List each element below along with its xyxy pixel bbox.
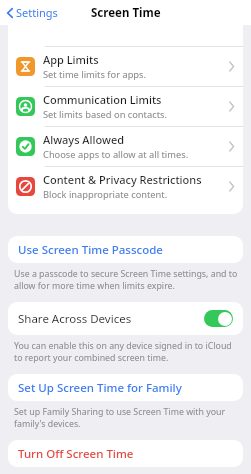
- button[interactable]: Turn Off Screen Time: [8, 440, 243, 467]
- staticText: You can enable this on any device signed…: [14, 340, 239, 364]
- button[interactable]: Use Screen Time Passcode: [8, 236, 243, 263]
- staticText: Set up Family Sharing to use Screen Time…: [14, 406, 239, 430]
- staticText: Always Allowed: [43, 132, 125, 147]
- staticText: Turn Off Screen Time: [18, 446, 134, 462]
- staticText: Content & Privacy Restrictions: [43, 172, 202, 187]
- button[interactable]: Settings: [4, 1, 61, 24]
- staticText: Set limits based on contacts.: [43, 108, 167, 121]
- button[interactable]: Share Across Devices: [8, 302, 243, 335]
- button[interactable]: Set Up Screen Time for Family: [8, 374, 243, 401]
- button[interactable]: Communication Limits: [8, 87, 243, 126]
- staticText: Communication Limits: [43, 92, 162, 107]
- staticText: Share Across Devices: [18, 311, 132, 327]
- button[interactable]: Content & Privacy Restrictions: [8, 167, 243, 206]
- staticText: Use a passcode to secure Screen Time set…: [14, 268, 239, 292]
- button[interactable]: App Limits: [8, 47, 243, 86]
- staticText: App Limits: [43, 52, 99, 67]
- staticText: Screen Time: [91, 5, 161, 21]
- staticText: Use Screen Time Passcode: [18, 242, 163, 258]
- staticText: Settings: [16, 5, 58, 20]
- staticText: Choose apps to allow at all times.: [43, 148, 189, 161]
- staticText: Set time limits for apps.: [43, 68, 147, 81]
- button[interactable]: Always Allowed: [8, 127, 243, 166]
- button[interactable]: Share Across Devices, on: [204, 310, 233, 327]
- staticText: Set Up Screen Time for Family: [18, 380, 182, 396]
- staticText: Block inappropriate content.: [43, 188, 168, 201]
